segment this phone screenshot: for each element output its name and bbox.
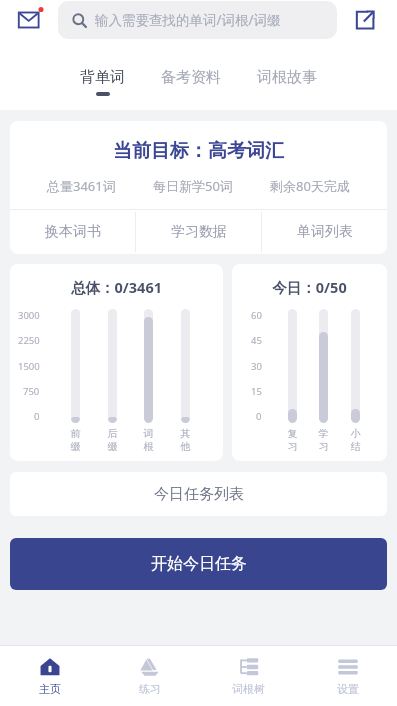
button[interactable]: 词根故事	[249, 64, 325, 96]
staticText: 45	[251, 334, 262, 347]
staticText: 开始今日任务	[151, 554, 247, 574]
staticText: 今日任务列表	[154, 485, 244, 504]
button[interactable]: 主页	[0, 646, 100, 706]
button[interactable]: 词根树	[199, 646, 298, 706]
staticText: 设置	[337, 682, 359, 696]
staticText: 学习	[318, 427, 329, 453]
staticText: 词根	[143, 427, 154, 453]
staticText: 1500	[18, 360, 40, 373]
staticText: 后缀	[107, 427, 118, 453]
staticText: 其他	[180, 427, 191, 453]
staticText: 总量3461词	[47, 177, 116, 195]
staticText: 词根故事	[257, 68, 317, 87]
staticText: 单词列表	[297, 223, 353, 241]
staticText: 学习数据	[171, 223, 227, 241]
staticText: 背单词	[80, 68, 125, 87]
staticText: 复习	[287, 427, 298, 453]
staticText: 输入需要查找的单词/词根/词缀	[95, 11, 281, 29]
button[interactable]: 输入需要查找的单词/词根/词缀	[58, 1, 337, 39]
staticText: 3000	[18, 309, 40, 322]
button[interactable]: 总体：0/3461	[10, 264, 223, 461]
staticText: 30	[251, 360, 262, 373]
staticText: 15	[251, 385, 262, 398]
button[interactable]: 换本词书	[10, 210, 135, 254]
staticText: 当前目标：高考词汇	[10, 139, 387, 163]
staticText: 主页	[39, 682, 61, 696]
staticText: 换本词书	[45, 223, 101, 241]
staticText: 备考资料	[161, 68, 221, 87]
button[interactable]: 学习数据	[136, 210, 261, 254]
staticText: 0	[34, 410, 40, 423]
staticText: 750	[23, 385, 40, 398]
button[interactable]: 备考资料	[153, 64, 229, 96]
staticText: 每日新学50词	[153, 177, 233, 195]
staticText: 小结	[350, 427, 361, 453]
button[interactable]: Messages	[12, 0, 52, 40]
staticText: 今日：0/50	[232, 277, 387, 297]
button[interactable]: 设置	[298, 646, 397, 706]
button[interactable]: Open external	[345, 0, 385, 40]
button[interactable]: 练习	[100, 646, 199, 706]
button[interactable]: 今日任务列表	[10, 472, 387, 516]
staticText: 练习	[139, 682, 161, 696]
staticText: 60	[251, 309, 262, 322]
staticText: 词根树	[232, 682, 265, 696]
button[interactable]: 开始今日任务	[10, 538, 387, 590]
staticText: 2250	[18, 334, 40, 347]
button[interactable]: 今日：0/50	[232, 264, 387, 461]
button[interactable]: 背单词	[72, 64, 133, 100]
staticText: 剩余80天完成	[270, 177, 350, 195]
staticText: 0	[256, 410, 262, 423]
staticText: 前缀	[70, 427, 81, 453]
staticText: 总体：0/3461	[10, 277, 223, 297]
button[interactable]: 单词列表	[262, 210, 387, 254]
